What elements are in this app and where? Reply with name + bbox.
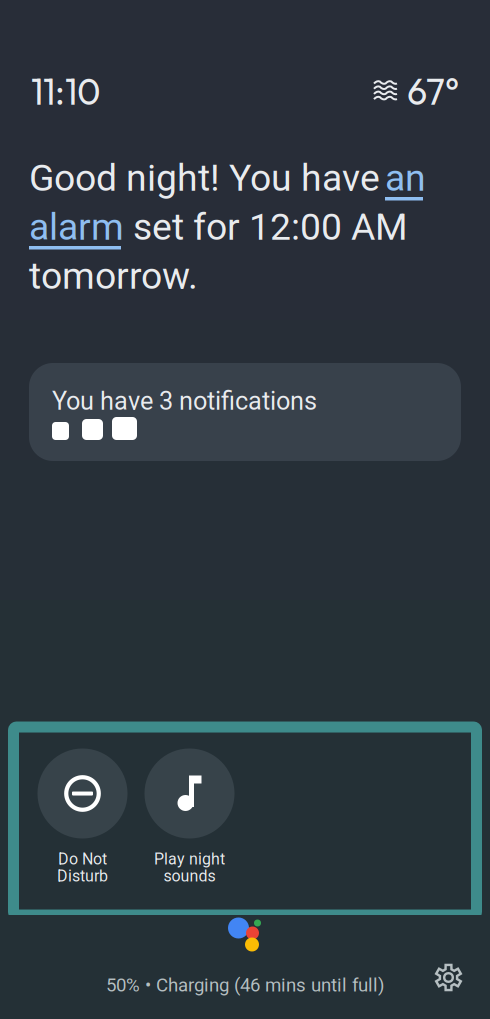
staticText: set for 12:00 AM	[124, 205, 408, 249]
staticText: Play night	[154, 850, 225, 868]
staticText: alarm	[29, 205, 124, 249]
staticText: tomorrow.	[29, 254, 198, 298]
staticText: You have 3 notifications	[52, 386, 317, 416]
staticText: 67°	[407, 69, 459, 114]
staticText: Disturb	[57, 867, 108, 885]
staticText: sounds	[163, 867, 215, 885]
staticText: 50% • Charging (46 mins until full)	[106, 974, 384, 996]
staticText: an	[385, 156, 426, 200]
staticText: Do Not	[58, 850, 107, 868]
button[interactable]: Do Not	[37, 748, 127, 884]
button[interactable]: Play night	[144, 748, 234, 884]
button[interactable]: You have 3 notifications	[29, 363, 461, 461]
staticText: Good night! You have	[29, 156, 389, 200]
staticText: 11:10	[31, 69, 101, 114]
button[interactable]: Settings	[425, 954, 472, 1001]
